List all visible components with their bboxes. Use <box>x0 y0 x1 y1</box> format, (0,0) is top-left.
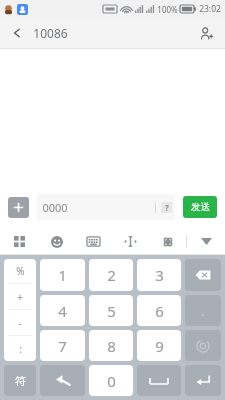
staticText: + <box>17 290 23 304</box>
button[interactable]: Back <box>40 365 85 396</box>
button[interactable]: Help <box>161 202 172 213</box>
staticText: 5 <box>107 301 116 321</box>
staticText: 0000 <box>42 200 68 215</box>
button[interactable]: 8 <box>89 330 133 361</box>
button[interactable]: Add attachment <box>8 197 29 218</box>
staticText: 发送 <box>191 201 210 213</box>
button[interactable]: Hide keyboard <box>187 229 225 254</box>
staticText: 100% <box>157 4 178 15</box>
button[interactable]: 0000 <box>37 194 175 220</box>
button[interactable]: 2 <box>89 259 133 291</box>
button[interactable]: 1 <box>40 259 85 291</box>
button[interactable]: 9 <box>137 330 181 361</box>
button[interactable]: 4 <box>40 295 85 326</box>
button[interactable]: Keyboard <box>75 229 112 254</box>
staticText: 4 <box>58 301 67 321</box>
button[interactable]: Emoji <box>38 229 75 254</box>
button[interactable]: - <box>4 310 36 335</box>
button[interactable]: 发送 <box>183 196 217 218</box>
button[interactable]: Cursor <box>112 229 149 254</box>
staticText: 符 <box>15 374 26 388</box>
staticText: 3 <box>155 265 164 285</box>
button[interactable]: 6 <box>137 295 181 326</box>
staticText: 10086 <box>33 25 68 41</box>
button[interactable]: Space <box>137 365 181 396</box>
staticText: 6 <box>155 301 164 321</box>
button[interactable]: Apps <box>0 229 38 254</box>
staticText: : <box>19 342 22 356</box>
staticText: 2 <box>107 265 116 285</box>
button[interactable]: At sign <box>185 330 221 361</box>
button[interactable]: % <box>4 259 36 283</box>
staticText: - <box>18 316 22 330</box>
button[interactable]: 3 <box>137 259 181 291</box>
button[interactable]: Add contact <box>196 23 217 44</box>
button[interactable]: 0 <box>89 365 133 396</box>
button[interactable]: Back <box>8 24 26 42</box>
staticText: 23:02 <box>199 3 221 15</box>
staticText: 9 <box>155 336 164 356</box>
button[interactable]: 7 <box>40 330 85 361</box>
staticText: ? <box>165 202 169 213</box>
staticText: 8 <box>107 336 116 356</box>
button[interactable]: 5 <box>89 295 133 326</box>
button[interactable]: + <box>4 284 36 309</box>
button[interactable]: 符 <box>4 365 36 396</box>
staticText: . <box>201 302 205 320</box>
staticText: 1 <box>58 265 67 285</box>
button[interactable]: Enter <box>185 365 221 396</box>
staticText: 0 <box>107 371 116 391</box>
button[interactable]: Settings <box>149 229 186 254</box>
staticText: 7 <box>58 336 67 356</box>
button[interactable]: Backspace <box>185 259 221 291</box>
button[interactable]: : <box>4 336 36 361</box>
staticText: % <box>16 264 25 278</box>
